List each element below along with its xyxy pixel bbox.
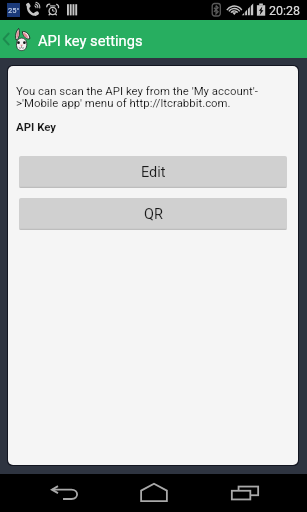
button[interactable]: Navigate up (0, 20, 307, 58)
staticText: You can scan the API key from the 'My ac… (16, 84, 258, 110)
staticText: API key settings (38, 32, 143, 49)
button[interactable]: Edit (19, 156, 287, 188)
button[interactable]: Back (20, 474, 110, 512)
staticText: Edit (141, 164, 166, 181)
staticText: 20:28 (269, 3, 301, 18)
button[interactable]: Home (109, 474, 199, 512)
staticText: 25° (8, 6, 20, 15)
staticText: API Key (16, 120, 57, 133)
staticText: QR (144, 206, 163, 223)
button[interactable]: Recent apps (200, 474, 290, 512)
button[interactable]: QR (19, 198, 287, 230)
